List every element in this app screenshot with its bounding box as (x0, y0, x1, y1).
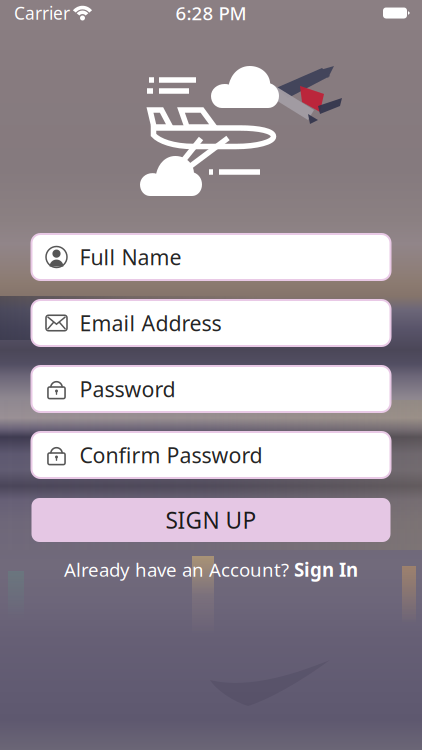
staticText: SIGN UP (165, 505, 256, 535)
button[interactable]: Already have an Account? (64, 557, 358, 582)
staticText: 6:28 PM (175, 1, 246, 25)
staticText: Carrier (14, 1, 70, 24)
staticText: Password (79, 375, 175, 403)
staticText: Confirm Password (79, 441, 262, 469)
staticText: Full Name (79, 243, 181, 271)
staticText: Already have an Account? (64, 557, 294, 582)
button[interactable]: Confirm Password (31, 432, 390, 478)
button[interactable]: Full Name (31, 234, 390, 280)
staticText: Sign In (294, 557, 358, 582)
button[interactable]: SIGN UP (31, 498, 390, 542)
staticText: Email Address (79, 309, 221, 337)
button[interactable]: Email Address (31, 300, 390, 346)
button[interactable]: Password (31, 366, 390, 412)
